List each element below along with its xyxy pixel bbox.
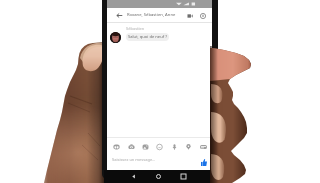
button[interactable]: Video call: [183, 8, 197, 23]
button[interactable]: Info: [196, 8, 210, 23]
button[interactable]: Send like: [197, 156, 210, 168]
button[interactable]: GIF: [196, 140, 211, 154]
staticText: Roxane, Sébastien, Anne: [127, 12, 176, 18]
button[interactable]: Recents: [171, 170, 196, 183]
button[interactable]: Emoji: [152, 140, 167, 154]
button[interactable]: Back: [111, 8, 127, 23]
button[interactable]: Voice message: [167, 140, 182, 154]
button[interactable]: Add sticker: [109, 140, 124, 154]
button[interactable]: Back: [121, 170, 146, 183]
staticText: Sébastien: [126, 26, 145, 31]
button[interactable]: Gallery: [138, 140, 153, 154]
button[interactable]: Home: [146, 170, 171, 183]
staticText: Salut, quoi de neuf ?: [128, 34, 167, 40]
button[interactable]: Location: [181, 140, 196, 154]
staticText: Saisissez un message...: [112, 157, 156, 162]
button[interactable]: Camera: [124, 140, 139, 154]
